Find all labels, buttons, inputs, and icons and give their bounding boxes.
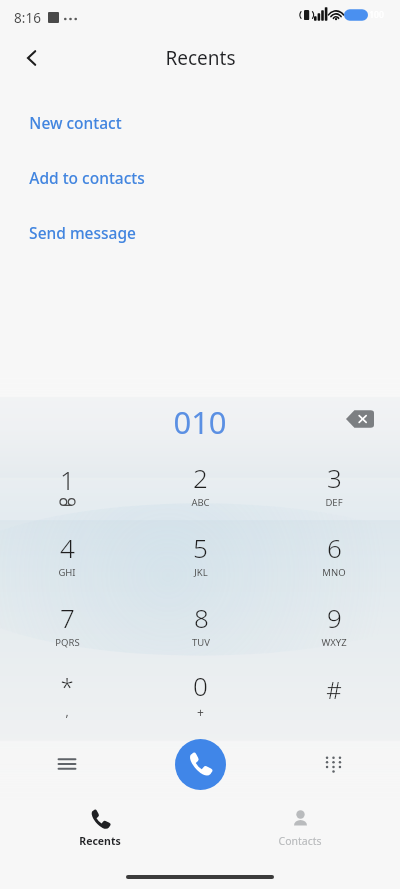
button[interactable]: Contacts: [200, 800, 400, 856]
staticText: 0: [193, 668, 208, 703]
staticText: 3: [327, 460, 342, 495]
staticText: 4: [60, 530, 75, 565]
staticText: New contact: [29, 112, 122, 133]
staticText: TUV: [192, 636, 210, 649]
button[interactable]: 4: [0, 519, 134, 589]
staticText: 5: [193, 530, 208, 565]
button[interactable]: 6: [267, 519, 400, 589]
button[interactable]: 9: [267, 589, 400, 659]
staticText: #: [326, 673, 342, 706]
button[interactable]: 8: [134, 589, 267, 659]
button[interactable]: 5: [134, 519, 267, 589]
button[interactable]: *: [0, 659, 134, 729]
staticText: Recents: [165, 45, 236, 71]
staticText: 2: [193, 460, 208, 495]
staticText: GHI: [58, 566, 76, 579]
staticText: DEF: [325, 496, 343, 509]
button[interactable]: Menu: [0, 729, 134, 799]
button[interactable]: 2: [134, 449, 267, 519]
button[interactable]: 3: [267, 449, 400, 519]
button[interactable]: 7: [0, 589, 134, 659]
staticText: 8:16: [14, 9, 41, 27]
staticText: 1: [60, 462, 75, 497]
staticText: Contacts: [278, 834, 322, 848]
button[interactable]: New contact: [0, 100, 400, 145]
button[interactable]: 1: [0, 449, 134, 519]
staticText: Add to contacts: [29, 167, 145, 188]
button[interactable]: Delete: [338, 397, 382, 441]
staticText: +: [197, 704, 204, 720]
button[interactable]: Back: [10, 36, 54, 80]
staticText: MNO: [322, 566, 346, 579]
staticText: 8: [194, 600, 209, 635]
staticText: Recents: [79, 834, 121, 848]
button[interactable]: 0: [134, 659, 267, 729]
button[interactable]: Recents: [0, 800, 200, 856]
button[interactable]: Send message: [0, 210, 400, 255]
staticText: PQRS: [55, 636, 80, 649]
button[interactable]: #: [267, 659, 400, 729]
staticText: 7: [60, 600, 75, 635]
button[interactable]: Add to contacts: [0, 155, 400, 200]
button[interactable]: Keypad: [267, 729, 400, 799]
staticText: ,: [65, 703, 69, 719]
staticText: JKL: [194, 566, 208, 579]
staticText: 6: [327, 530, 342, 565]
button[interactable]: Call: [175, 739, 226, 790]
staticText: Send message: [29, 222, 136, 243]
staticText: 9: [327, 600, 342, 635]
staticText: WXYZ: [321, 636, 347, 649]
staticText: 010: [173, 401, 227, 443]
staticText: ABC: [191, 496, 210, 509]
staticText: *: [60, 670, 74, 703]
